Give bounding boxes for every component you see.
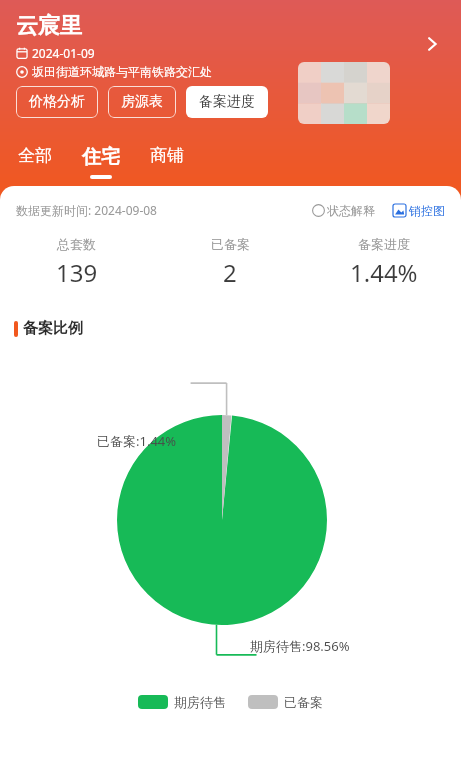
staticText: 状态解释 <box>327 203 375 218</box>
button[interactable]: 备案进度 <box>307 236 461 289</box>
button[interactable]: 住宅 <box>78 145 124 179</box>
button[interactable]: 总套数 <box>0 236 153 289</box>
button[interactable]: 全部 <box>14 145 56 172</box>
staticText: 全部 <box>18 145 52 166</box>
button[interactable]: More <box>418 30 446 58</box>
staticText: 住宅 <box>82 145 120 169</box>
button[interactable]: 销控图 <box>393 203 445 218</box>
button[interactable]: 价格分析 <box>16 86 98 118</box>
staticText: 云宸里 <box>16 12 82 40</box>
button[interactable]: 商铺 <box>146 145 188 172</box>
staticText: 数据更新时间: 2024-09-08 <box>16 202 157 218</box>
staticText: 备案进度 <box>199 93 255 111</box>
staticText: 备案进度 <box>358 236 410 252</box>
staticText: 已备案:1.44% <box>97 432 177 450</box>
button[interactable]: 房源表 <box>108 86 176 118</box>
button[interactable]: 状态解释 <box>312 203 375 218</box>
staticText: 坂田街道环城路与平南铁路交汇处 <box>32 64 212 79</box>
staticText: 已备案 <box>211 236 250 252</box>
staticText: 已备案 <box>284 694 323 710</box>
staticText: 1.44% <box>350 256 418 289</box>
staticText: 价格分析 <box>29 93 85 111</box>
staticText: 期房待售 <box>174 694 226 710</box>
button[interactable]: 备案进度 <box>186 86 268 118</box>
staticText: 期房待售:98.56% <box>250 637 350 655</box>
staticText: 总套数 <box>57 236 96 252</box>
staticText: 2 <box>223 256 237 289</box>
button[interactable]: 已备案 <box>153 236 307 289</box>
staticText: 房源表 <box>121 93 163 111</box>
staticText: 备案比例 <box>23 319 83 338</box>
staticText: 139 <box>56 256 98 289</box>
staticText: 2024-01-09 <box>32 45 95 61</box>
staticText: 销控图 <box>409 203 445 218</box>
staticText: 商铺 <box>150 145 184 166</box>
